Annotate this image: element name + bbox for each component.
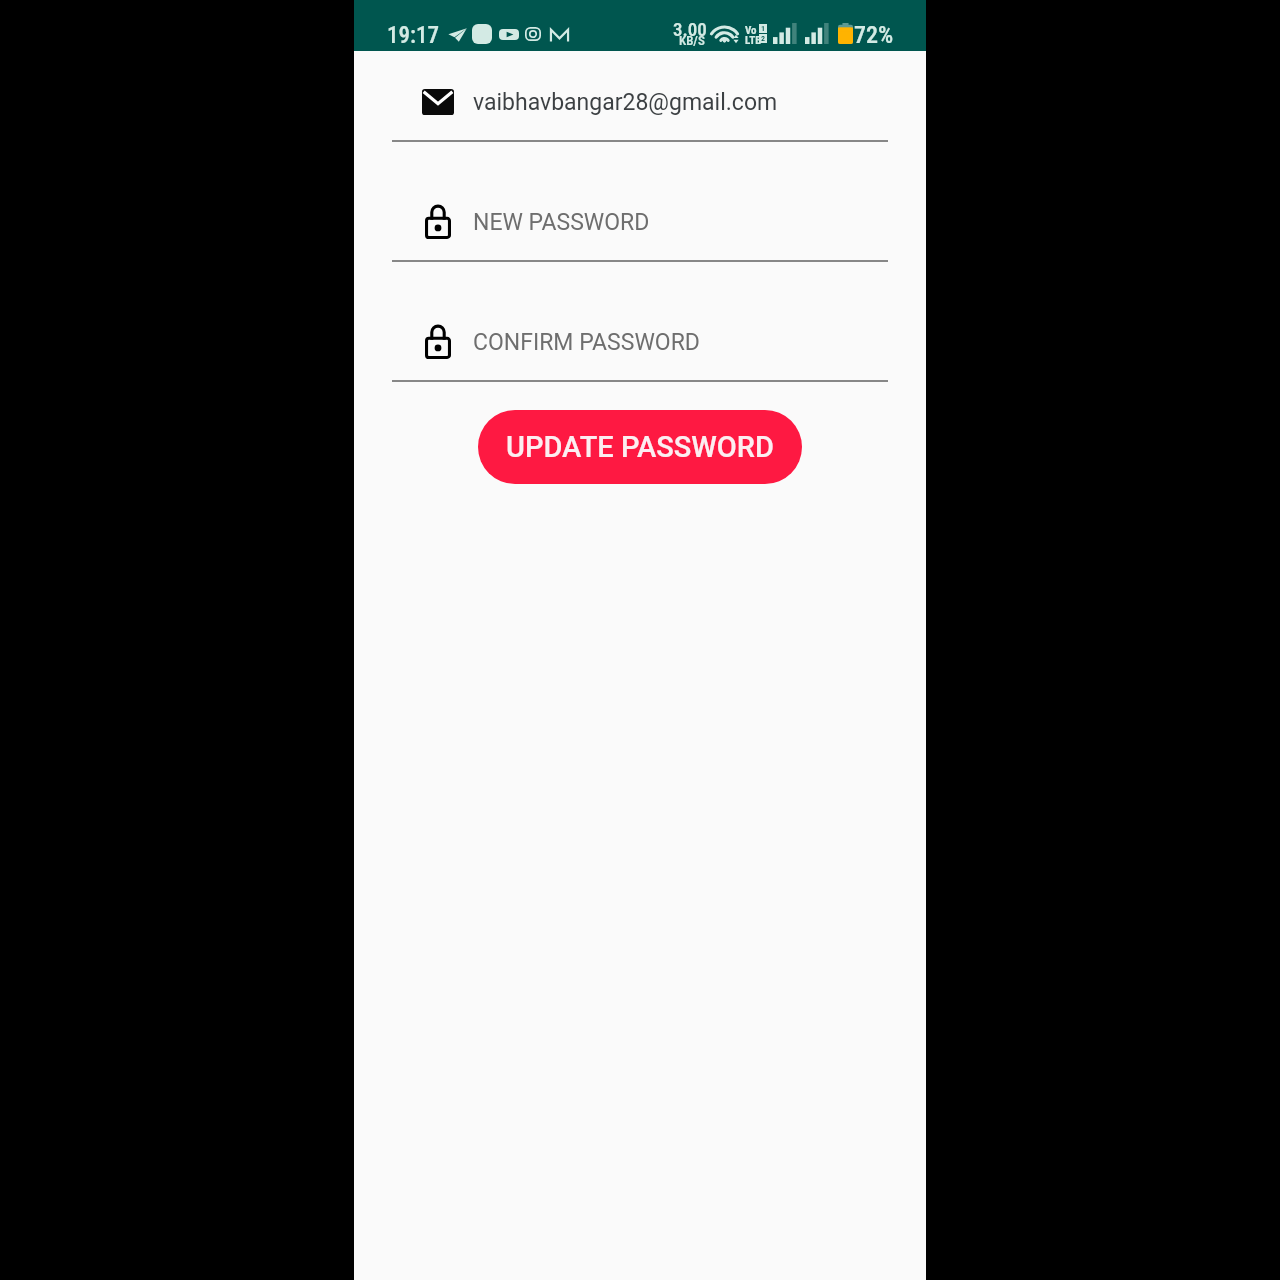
button[interactable]: UPDATE PASSWORD [478,410,802,484]
staticText: 3.00 [673,18,707,40]
other: SIM 2 signal strength [805,23,830,44]
button[interactable]: Password [354,304,926,382]
staticText: vaibhavbangar28@gmail.com [473,89,778,116]
other: Email [422,89,454,115]
staticText: 72% [854,21,894,49]
staticText: CONFIRM PASSWORD [473,329,700,356]
other: YouTube notification [499,29,519,40]
staticText: KB/S [679,33,705,48]
staticText: 2 [761,34,766,43]
other: Gmail notification [550,29,569,42]
other: Battery 72 percent [838,23,853,44]
staticText: UPDATE PASSWORD [506,430,774,464]
other: Instagram notification [525,27,541,41]
other: Password [425,325,451,359]
other: Telegram notification [448,28,467,42]
staticText: 1 [761,24,766,33]
other: Password [425,205,451,239]
other: App notification [472,24,492,44]
staticText: LTE [745,34,761,47]
other: SIM 1 signal strength [773,23,798,44]
staticText: Vo [745,24,757,37]
staticText: 19:17 [387,22,440,49]
button[interactable]: Email [354,64,926,142]
button[interactable]: Password [354,184,926,262]
staticText: NEW PASSWORD [473,209,650,236]
other: Wi-Fi connected [714,23,739,44]
